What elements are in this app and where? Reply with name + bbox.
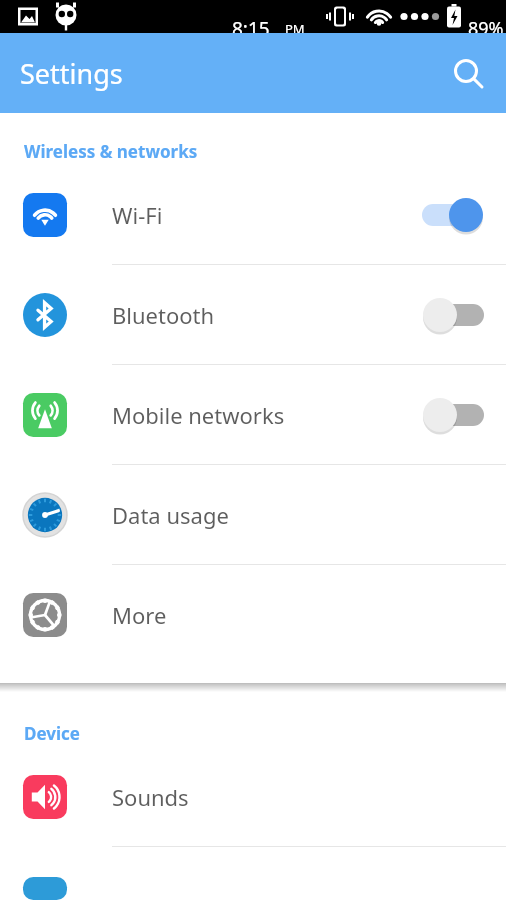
staticText: Mobile networks bbox=[112, 400, 285, 430]
staticText: Wi-Fi bbox=[112, 200, 163, 230]
button[interactable]: Mobile networks bbox=[0, 365, 506, 465]
button[interactable]: More bbox=[0, 565, 506, 665]
button[interactable]: Wi-Fi toggle bbox=[422, 193, 484, 237]
staticText: PM bbox=[285, 20, 305, 38]
staticText: 8:15 bbox=[232, 16, 270, 42]
staticText: Data usage bbox=[112, 500, 229, 530]
button[interactable]: Search bbox=[442, 47, 494, 99]
staticText: Bluetooth bbox=[112, 300, 215, 330]
button[interactable]: Bluetooth toggle bbox=[422, 293, 484, 337]
staticText: More bbox=[112, 600, 167, 630]
button[interactable]: Wi-Fi bbox=[0, 165, 506, 265]
button[interactable]: Mobile networks toggle bbox=[422, 393, 484, 437]
staticText: 89% bbox=[468, 16, 504, 41]
staticText: Wireless & networks bbox=[24, 140, 198, 163]
staticText: Sounds bbox=[112, 782, 189, 812]
staticText: Settings bbox=[20, 55, 123, 92]
button[interactable]: Bluetooth bbox=[0, 265, 506, 365]
staticText: Device bbox=[24, 722, 80, 745]
button[interactable] bbox=[0, 847, 506, 900]
button[interactable]: Sounds bbox=[0, 747, 506, 847]
button[interactable]: Data usage bbox=[0, 465, 506, 565]
